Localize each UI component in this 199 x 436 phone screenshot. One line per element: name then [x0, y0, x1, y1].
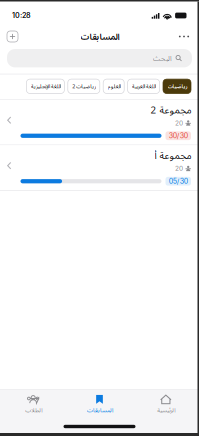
staticText: المسابقات: [80, 31, 119, 42]
button[interactable]: مجموعة 2: [0, 100, 199, 145]
button[interactable]: Add: [7, 31, 18, 42]
staticText: الرئيسية: [157, 406, 175, 414]
button[interactable]: المسابقات: [66, 390, 133, 417]
staticText: 10:28: [12, 11, 31, 20]
button[interactable]: الطلاب: [0, 390, 66, 417]
staticText: مجموعة أ: [154, 149, 191, 162]
staticText: 20: [175, 164, 183, 172]
staticText: المسابقات: [86, 406, 112, 414]
button[interactable]: البحث: [7, 49, 192, 67]
staticText: الطلاب: [25, 406, 42, 414]
staticText: البحث: [152, 53, 171, 63]
staticText: رياضيات: [167, 83, 187, 90]
staticText: مجموعة 2: [150, 103, 191, 116]
button[interactable]: اللغة الإنجليزية: [26, 79, 64, 93]
staticText: 20: [175, 119, 183, 127]
staticText: اللغة العربية: [132, 83, 156, 90]
button[interactable]: رياضيات 2: [68, 79, 100, 93]
button[interactable]: الرئيسية: [133, 390, 199, 417]
button[interactable]: اللغة العربية: [128, 79, 160, 93]
button[interactable]: رياضيات: [163, 79, 191, 93]
button[interactable]: العلوم: [103, 79, 124, 93]
staticText: رياضيات 2: [72, 83, 96, 90]
staticText: 05/30: [169, 177, 188, 185]
staticText: العلوم: [107, 83, 120, 90]
button[interactable]: مجموعة أ: [0, 145, 199, 190]
button[interactable]: More: [176, 31, 192, 42]
staticText: 30/30: [169, 131, 188, 140]
staticText: اللغة الإنجليزية: [30, 83, 60, 90]
